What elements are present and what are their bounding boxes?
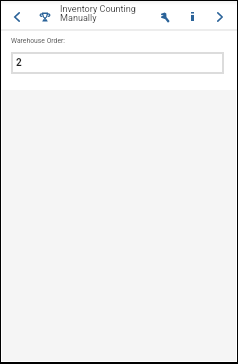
staticText: Inventory Counting Manually	[60, 4, 136, 24]
button[interactable]: Info	[182, 4, 203, 29]
button[interactable]: Back	[8, 4, 25, 29]
button[interactable]: Awards	[34, 4, 55, 29]
button[interactable]: 2	[11, 52, 224, 74]
staticText: 2	[16, 57, 22, 69]
staticText: Warehouse Order:	[11, 37, 65, 45]
button[interactable]: Next	[211, 4, 229, 29]
button[interactable]: Settings	[154, 4, 175, 29]
